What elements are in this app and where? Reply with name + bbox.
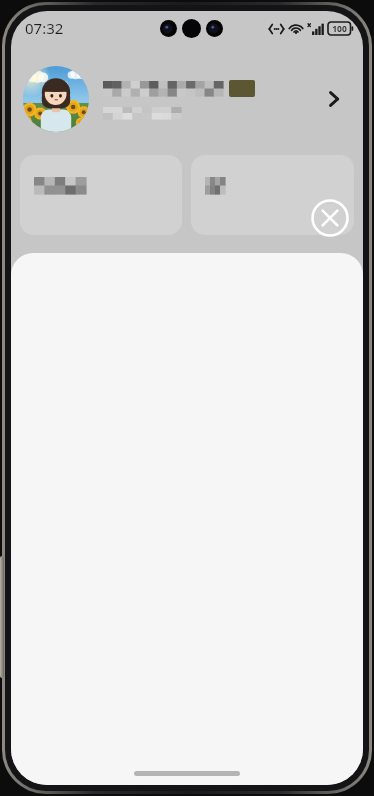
staticText: 100 [332,23,347,35]
button[interactable] [20,155,182,235]
button[interactable] [191,155,354,235]
button[interactable]: Open profile [317,82,351,116]
staticText: 07:32 [25,18,64,38]
button[interactable]: Open profile [11,61,363,137]
button[interactable]: Close [311,199,349,237]
